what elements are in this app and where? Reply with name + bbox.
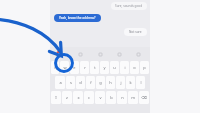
staticText: s bbox=[70, 80, 72, 85]
button[interactable]: m bbox=[128, 91, 138, 104]
button[interactable]: z bbox=[62, 91, 72, 104]
button[interactable]: q bbox=[51, 61, 59, 74]
staticText: f bbox=[90, 80, 92, 85]
staticText: c bbox=[88, 95, 90, 100]
button[interactable]: Stickers bbox=[97, 51, 103, 57]
staticText: v bbox=[99, 95, 102, 100]
staticText: Not sure bbox=[129, 30, 142, 34]
button[interactable]: t bbox=[90, 61, 99, 74]
button[interactable]: p bbox=[140, 61, 149, 74]
staticText: t bbox=[94, 65, 96, 70]
staticText: Yeah, know the address? bbox=[59, 16, 96, 20]
button[interactable]: Emoji bbox=[116, 51, 122, 57]
button[interactable]: Not sure bbox=[124, 28, 147, 36]
button[interactable]: ⇧ bbox=[51, 91, 61, 104]
staticText: ⌫ bbox=[141, 95, 147, 100]
button[interactable]: u bbox=[110, 61, 119, 74]
staticText: x bbox=[77, 95, 80, 100]
button[interactable]: a bbox=[55, 76, 65, 89]
button[interactable]: c bbox=[84, 91, 94, 104]
staticText: Sure, sounds good bbox=[115, 4, 143, 8]
staticText: h bbox=[109, 80, 112, 85]
staticText: i bbox=[124, 65, 126, 70]
button[interactable]: w bbox=[60, 61, 69, 74]
staticText: q bbox=[54, 65, 57, 70]
button[interactable]: h bbox=[106, 76, 115, 89]
staticText: ⇧ bbox=[54, 95, 58, 100]
other: Highlighted Google key bbox=[51, 50, 77, 76]
button[interactable]: Google search bbox=[54, 49, 63, 58]
button[interactable]: y bbox=[100, 61, 109, 74]
button[interactable]: b bbox=[106, 91, 116, 104]
button[interactable]: g bbox=[96, 76, 105, 89]
button[interactable]: ⌫ bbox=[139, 91, 149, 104]
staticText: g bbox=[99, 80, 102, 85]
button[interactable]: r bbox=[80, 61, 89, 74]
staticText: m bbox=[131, 95, 135, 100]
staticText: z bbox=[66, 95, 68, 100]
staticText: l bbox=[140, 80, 142, 85]
staticText: o bbox=[133, 65, 136, 70]
button[interactable]: j bbox=[116, 76, 125, 89]
staticText: a bbox=[59, 80, 62, 85]
staticText: p bbox=[143, 65, 146, 70]
button[interactable]: o bbox=[130, 61, 139, 74]
button[interactable]: Settings bbox=[135, 51, 141, 57]
button[interactable]: s bbox=[66, 76, 75, 89]
button[interactable]: i bbox=[120, 61, 129, 74]
staticText: b bbox=[110, 95, 113, 100]
button[interactable]: v bbox=[95, 91, 105, 104]
button[interactable]: f bbox=[86, 76, 95, 89]
staticText: k bbox=[129, 80, 132, 85]
button[interactable]: d bbox=[76, 76, 85, 89]
staticText: j bbox=[120, 80, 122, 85]
button[interactable]: x bbox=[73, 91, 83, 104]
staticText: w bbox=[63, 65, 67, 70]
staticText: e bbox=[73, 65, 76, 70]
button[interactable]: l bbox=[136, 76, 145, 89]
button[interactable]: Sure, sounds good bbox=[111, 2, 147, 10]
staticText: y bbox=[103, 65, 106, 70]
button[interactable]: n bbox=[117, 91, 127, 104]
button[interactable]: Yeah, know the address? bbox=[54, 14, 101, 22]
button[interactable]: GIF bbox=[77, 51, 83, 57]
button[interactable]: e bbox=[70, 61, 79, 74]
button[interactable]: k bbox=[126, 76, 135, 89]
staticText: u bbox=[113, 65, 116, 70]
staticText: r bbox=[84, 65, 86, 70]
staticText: d bbox=[79, 80, 82, 85]
staticText: n bbox=[121, 95, 124, 100]
